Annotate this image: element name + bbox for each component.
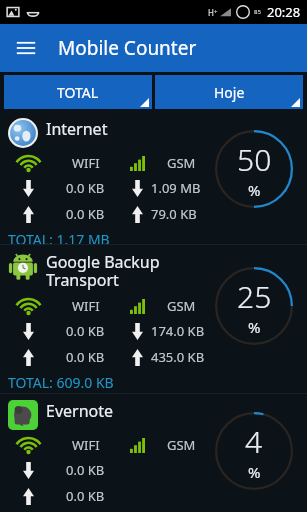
staticText: Mobile Counter <box>58 35 197 61</box>
staticText: % <box>248 317 261 337</box>
staticText: 174.0 KB <box>151 322 205 340</box>
staticText: % <box>248 462 261 482</box>
staticText: H <box>208 7 214 18</box>
staticText: TOTAL: 609.0 KB <box>8 373 114 392</box>
staticText: 0.0 KB <box>66 461 105 479</box>
staticText: Internet <box>46 118 216 140</box>
staticText: 0.0 KB <box>66 322 105 340</box>
staticText: 25 <box>237 276 272 317</box>
staticText: WIFI <box>72 297 100 315</box>
button[interactable]: Hoje <box>155 75 303 109</box>
staticText: GSM <box>167 154 196 172</box>
staticText: 0.0 KB <box>66 348 105 366</box>
staticText: 20:28 <box>267 3 301 21</box>
button[interactable]: Evernote <box>0 394 307 512</box>
staticText: Evernote <box>46 400 216 422</box>
staticText: % <box>248 180 261 200</box>
staticText: 1.09 MB <box>151 179 201 197</box>
staticText: Google Backup Transport <box>46 251 216 291</box>
staticText: 4 <box>245 421 263 462</box>
button[interactable]: Google Backup Transport <box>0 245 307 393</box>
staticText: 0.0 KB <box>66 179 105 197</box>
staticText: WIFI <box>72 154 100 172</box>
staticText: 79.0 KB <box>151 205 197 223</box>
staticText: TOTAL <box>57 83 99 102</box>
button[interactable]: Open navigation drawer <box>8 30 44 66</box>
staticText: 85 <box>254 8 261 16</box>
staticText: GSM <box>167 297 196 315</box>
staticText: + <box>214 8 218 16</box>
staticText: 0.0 KB <box>66 205 105 223</box>
staticText: Hoje <box>214 83 245 102</box>
staticText: TOTAL: 1.17 MB <box>8 230 110 244</box>
staticText: GSM <box>167 436 196 454</box>
staticText: WIFI <box>72 436 100 454</box>
button[interactable]: TOTAL <box>4 75 152 109</box>
button[interactable]: Internet <box>0 112 307 244</box>
staticText: 435.0 KB <box>151 348 205 366</box>
staticText: 50 <box>237 139 272 180</box>
staticText: 0.0 KB <box>66 487 105 505</box>
